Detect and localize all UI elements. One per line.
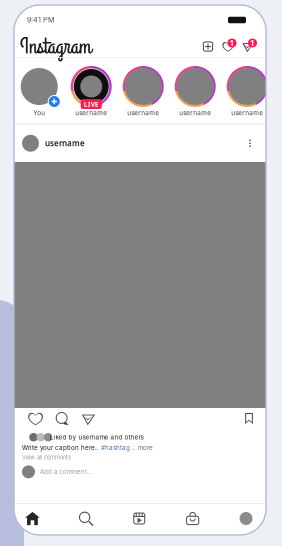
staticText: Instagram [20, 31, 91, 62]
button[interactable]: Reels [112, 503, 166, 534]
staticText: Liked by username and others [49, 433, 143, 441]
staticText: View all comments [22, 454, 71, 461]
staticText: 1 [250, 38, 255, 48]
staticText: username [179, 109, 211, 117]
button[interactable]: Direct messages [238, 37, 258, 55]
staticText: Write your caption here.. [22, 444, 99, 452]
staticText: 9:41 PM [27, 16, 55, 24]
staticText: username [127, 109, 159, 117]
staticText: LIVE [84, 100, 99, 108]
button[interactable]: Search [59, 503, 112, 534]
button[interactable]: Home [6, 503, 59, 534]
staticText: Add a comment... [40, 468, 93, 475]
button[interactable]: Comment [49, 408, 75, 429]
staticText: .. more [130, 444, 153, 452]
button[interactable]: Share [75, 408, 102, 429]
button[interactable]: More options [243, 136, 257, 150]
button[interactable]: Save [238, 408, 259, 429]
button[interactable]: New post [198, 37, 218, 55]
staticText: #hashtag [99, 444, 130, 452]
staticText: You [33, 109, 45, 117]
button[interactable]: Activity [218, 37, 238, 55]
staticText: username [231, 109, 263, 117]
button[interactable]: Like [22, 408, 49, 429]
staticText: username [75, 109, 107, 117]
button[interactable]: Shop [166, 503, 219, 534]
staticText: username [45, 138, 85, 148]
button[interactable]: Profile [219, 503, 273, 534]
staticText: 1 [229, 38, 234, 48]
